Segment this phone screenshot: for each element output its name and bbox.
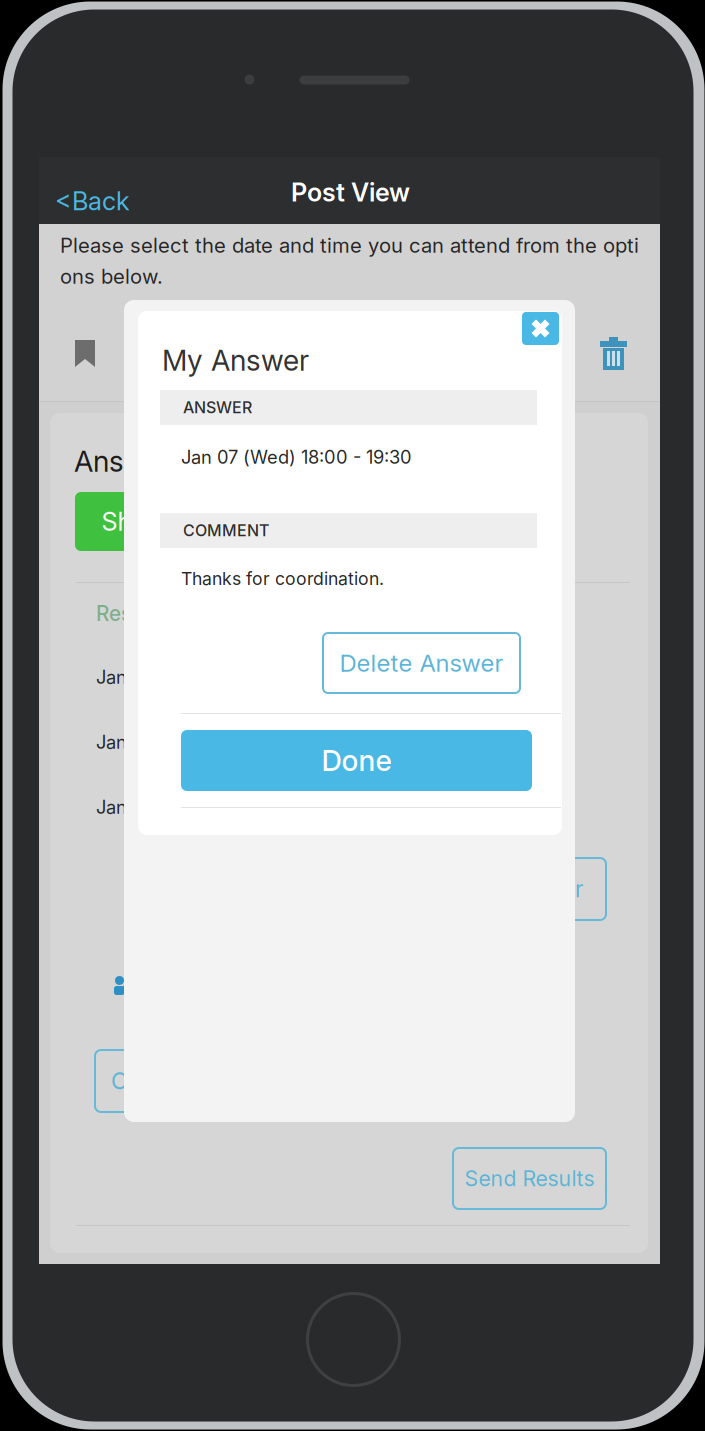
button[interactable]: Comment <box>95 1050 230 1112</box>
staticText: Please select the date and time you can … <box>60 233 639 257</box>
staticText: Show <box>101 506 166 537</box>
staticText: <Back <box>55 186 130 216</box>
staticText: Comment <box>111 1067 214 1095</box>
button[interactable]: Close <box>522 312 559 345</box>
button[interactable]: Show <box>75 492 193 551</box>
staticText: My Answer <box>162 343 309 378</box>
staticText: Results <box>96 601 167 626</box>
staticText: Thanks for coordination. <box>181 568 384 589</box>
staticText: ons below. <box>60 264 163 288</box>
button[interactable]: Answer <box>481 858 606 920</box>
staticText: Answer <box>74 444 172 479</box>
button[interactable]: Done <box>181 730 532 791</box>
button[interactable]: Bookmark <box>59 324 111 383</box>
staticText: ANSWER <box>183 398 252 417</box>
staticText: Delete Answer <box>339 648 503 677</box>
button[interactable]: Delete <box>584 321 643 386</box>
button[interactable]: Send Results <box>453 1148 606 1209</box>
button[interactable]: <Back <box>45 171 141 231</box>
staticText: Jan 07 (Wed) 18:00 - 19:30 <box>96 666 327 688</box>
staticText: COMMENT <box>183 521 269 540</box>
staticText: Send Results <box>464 1166 594 1191</box>
button[interactable]: Delete Answer <box>323 633 520 693</box>
staticText: Jan 09 (Fri) 18:00 - 19:30 <box>96 796 311 818</box>
staticText: Answer <box>504 875 583 903</box>
staticText: Done <box>321 743 391 778</box>
staticText: Post View <box>291 177 410 208</box>
staticText: Jan 07 (Wed) 18:00 - 19:30 <box>181 446 412 468</box>
staticText: Jan 08 (Thu) 18:00 - 19:30 <box>96 731 324 753</box>
